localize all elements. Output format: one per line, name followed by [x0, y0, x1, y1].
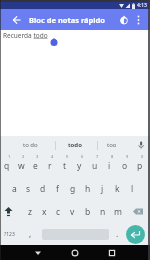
button[interactable]: n — [95, 200, 110, 223]
staticText: j — [101, 183, 104, 195]
staticText: k — [115, 183, 120, 195]
staticText: v — [70, 206, 75, 218]
button[interactable]: to do — [23, 141, 38, 149]
button[interactable]: i — [102, 154, 117, 177]
staticText: e — [33, 160, 38, 172]
button[interactable] — [71, 249, 79, 257]
button[interactable]: b — [80, 200, 95, 223]
staticText: r — [48, 160, 52, 172]
staticText: f — [56, 183, 59, 195]
button[interactable]: y — [72, 154, 87, 177]
button[interactable]: z — [23, 200, 37, 223]
button[interactable]: t — [57, 154, 72, 177]
button[interactable]: m — [110, 200, 125, 223]
button[interactable]: v — [65, 200, 80, 223]
button[interactable] — [34, 249, 42, 257]
button[interactable]: too — [107, 141, 117, 149]
button[interactable]: u — [87, 154, 102, 177]
button[interactable]: . — [116, 228, 119, 240]
staticText: Bloc de notas rápido — [29, 15, 106, 25]
button[interactable]: a — [7, 177, 21, 200]
staticText: 2 — [22, 154, 25, 159]
button[interactable]: x — [37, 200, 51, 223]
button[interactable]: j — [95, 177, 110, 200]
button[interactable]: s — [21, 177, 35, 200]
button[interactable]: e — [28, 154, 42, 177]
staticText: s — [26, 183, 31, 195]
staticText: u — [92, 160, 98, 172]
staticText: a — [12, 183, 17, 195]
button[interactable]: o — [117, 154, 132, 177]
staticText: p — [137, 160, 143, 172]
staticText: o — [122, 160, 128, 172]
button[interactable]: , — [29, 228, 32, 240]
staticText: Recuerda todo — [3, 31, 48, 40]
staticText: m — [114, 206, 122, 218]
staticText: 5 — [66, 154, 69, 159]
button[interactable]: ?123 — [4, 231, 15, 238]
staticText: t — [63, 160, 67, 172]
staticText: 3 — [36, 154, 39, 159]
button[interactable] — [125, 200, 150, 223]
button[interactable] — [0, 200, 23, 223]
staticText: 7 — [96, 154, 99, 159]
staticText: l — [131, 183, 134, 195]
staticText: h — [85, 183, 91, 195]
button[interactable] — [126, 225, 145, 244]
staticText: n — [100, 206, 106, 218]
button[interactable] — [108, 249, 116, 257]
button[interactable]: l — [125, 177, 140, 200]
staticText: y — [77, 160, 82, 172]
staticText: 9 — [126, 154, 129, 159]
button[interactable]: q — [0, 154, 14, 177]
button[interactable]: h — [80, 177, 95, 200]
button[interactable] — [137, 15, 140, 25]
staticText: 8 — [111, 154, 114, 159]
staticText: 0 — [141, 154, 144, 159]
staticText: 4 — [51, 154, 54, 159]
staticText: w — [18, 160, 25, 172]
button[interactable] — [13, 16, 21, 24]
button[interactable]: f — [50, 177, 65, 200]
button[interactable]: Recuerda todo — [0, 30, 150, 136]
staticText: d — [40, 183, 46, 195]
staticText: i — [108, 160, 111, 172]
button[interactable]: k — [110, 177, 125, 200]
button[interactable]: d — [35, 177, 50, 200]
button[interactable] — [137, 141, 145, 149]
button[interactable]: r — [42, 154, 57, 177]
button[interactable]: p — [132, 154, 147, 177]
button[interactable]: todo — [68, 141, 82, 149]
button[interactable] — [119, 15, 129, 25]
button[interactable]: w — [14, 154, 28, 177]
staticText: b — [85, 206, 91, 218]
button[interactable]: c — [51, 200, 65, 223]
staticText: 6 — [81, 154, 84, 159]
staticText: g — [70, 183, 76, 195]
staticText: z — [28, 206, 32, 218]
staticText: 4:13 — [137, 2, 147, 9]
staticText: x — [42, 206, 47, 218]
staticText: 1 — [8, 154, 11, 159]
staticText: c — [56, 206, 61, 218]
staticText: q — [4, 160, 10, 172]
button[interactable]: g — [65, 177, 80, 200]
